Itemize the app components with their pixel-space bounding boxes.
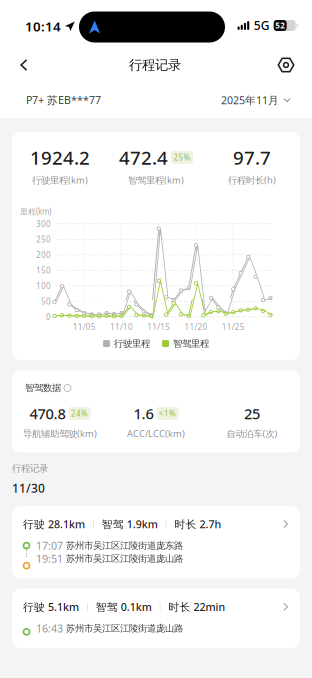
staticText: 100 [36,280,51,291]
staticText: 2025年11月 [221,93,279,107]
staticText: 24% [71,408,88,419]
staticText: 智驾 0.1km [96,600,152,614]
staticText: 11/10 [110,321,133,332]
staticText: 行驶 5.1km [23,600,79,614]
staticText: 行驶里程 [114,338,150,349]
staticText: 时长 22min [168,600,225,614]
staticText: 里程(km) [20,206,51,217]
staticText: 11/30 [12,480,45,496]
staticText: ACC/LCC(km) [127,427,185,440]
staticText: 11/15 [147,321,170,332]
staticText: 时长 2.7h [174,517,221,531]
staticText: 11/20 [184,321,207,332]
staticText: 150 [36,265,51,276]
staticText: 16:43 [36,621,63,635]
staticText: 19:51 [36,552,63,566]
staticText: 行驶 28.1km [23,517,85,531]
staticText: 300 [36,218,51,229]
staticText: 行程记录 [12,463,48,474]
button[interactable]: Back [9,48,39,82]
staticText: 行程时长(h) [228,174,276,186]
staticText: 52 [275,20,285,31]
staticText: 10:14 [25,17,61,35]
staticText: 苏州市吴江区江陵街道庞山路 [66,623,183,634]
button[interactable]: 行驶 5.1km [12,589,300,648]
staticText: P7+ 苏EB***77 [26,93,101,107]
staticText: 苏州市吴江区江陵街道庞山路 [66,553,183,564]
staticText: 行程记录 [129,57,181,73]
button[interactable]: Settings [271,48,301,82]
staticText: 5G [254,17,270,33]
staticText: 11/25 [222,321,245,332]
staticText: 自动泊车(次) [226,427,277,440]
staticText: 17:07 [36,539,63,553]
staticText: 25% [173,152,190,163]
staticText: 智驾里程 [173,338,209,349]
button[interactable]: 2025年11月 [221,88,291,112]
staticText: 智驾里程(km) [128,174,184,186]
staticText: 11/05 [73,321,96,332]
staticText: 1924.2 [30,145,90,170]
staticText: 200 [36,249,51,260]
staticText: <1% [159,408,176,419]
staticText: 50 [41,296,51,307]
staticText: 472.4 [119,145,168,170]
staticText: 行驶里程(km) [32,174,88,186]
staticText: 智驾 1.9km [102,517,158,531]
staticText: 导航辅助驾驶(km) [23,427,97,440]
staticText: 250 [36,234,51,245]
staticText: 智驾数据 [25,382,61,394]
staticText: 470.8 [29,404,65,423]
button[interactable]: 行驶 28.1km [12,506,300,579]
staticText: 97.7 [233,145,271,170]
staticText: 1.6 [133,404,153,423]
staticText: 25 [244,404,260,423]
staticText: 0 [46,311,51,322]
staticText: 苏州市吴江区江陵街道庞东路 [66,540,183,551]
